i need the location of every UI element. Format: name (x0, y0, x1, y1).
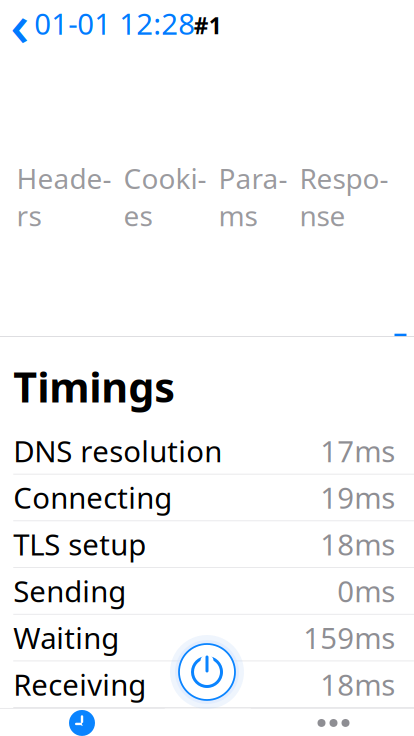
staticText: Connecting (13, 478, 172, 517)
staticText: Sending (13, 571, 126, 610)
staticText: 18ms (320, 665, 395, 704)
staticText: Response (299, 160, 388, 234)
staticText: 17ms (320, 431, 395, 470)
button[interactable]: Cookies (117, 152, 212, 242)
staticText: Timings (13, 359, 175, 414)
button[interactable]: TLS setup (0, 521, 414, 567)
staticText: DNS resolution (13, 431, 222, 470)
staticText: Receiving (13, 665, 146, 704)
button[interactable]: More (251, 704, 414, 736)
staticText: #1 (194, 10, 222, 40)
button[interactable]: Sending (0, 568, 414, 614)
staticText: ‹ (10, 0, 29, 62)
staticText: 18ms (320, 525, 395, 564)
staticText: 19ms (320, 478, 395, 517)
staticText: 159ms (303, 618, 395, 657)
staticText: 01-01 12:28 (34, 4, 195, 43)
staticText: Cookies (123, 160, 206, 234)
button[interactable]: ‹ (0, 0, 195, 66)
button[interactable]: Response (293, 152, 394, 242)
staticText: TLS setup (13, 525, 146, 564)
button[interactable]: Start capture (169, 634, 245, 710)
button[interactable]: Waiting (0, 615, 414, 661)
button[interactable]: Params (212, 152, 293, 242)
button[interactable]: Headers (10, 152, 117, 242)
staticText: Params (218, 160, 287, 234)
staticText: Waiting (13, 618, 119, 657)
staticText: Headers (16, 160, 111, 234)
staticText: 0ms (337, 571, 395, 610)
button[interactable]: Receiving (0, 661, 414, 707)
button[interactable]: Connecting (0, 474, 414, 520)
button[interactable]: Timings (394, 57, 406, 336)
button[interactable]: DNS resolution (0, 428, 414, 474)
button[interactable]: History (0, 704, 165, 736)
